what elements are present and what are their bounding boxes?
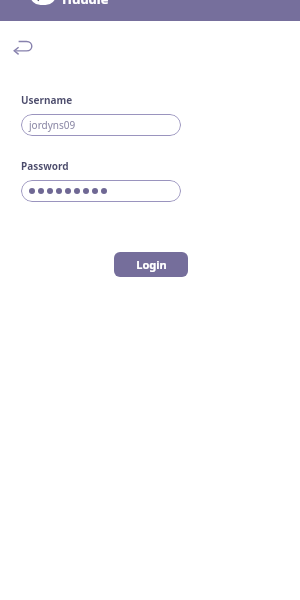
staticText: Password xyxy=(21,159,69,173)
staticText: Login xyxy=(136,257,167,272)
button[interactable]: jordyns09 xyxy=(21,114,181,136)
staticText: Username xyxy=(21,93,73,107)
staticText: Huddle xyxy=(62,0,109,8)
button[interactable]: Login xyxy=(114,252,188,277)
button[interactable] xyxy=(21,180,181,202)
staticText: jordyns09 xyxy=(29,118,76,132)
button[interactable]: Back xyxy=(8,32,38,62)
